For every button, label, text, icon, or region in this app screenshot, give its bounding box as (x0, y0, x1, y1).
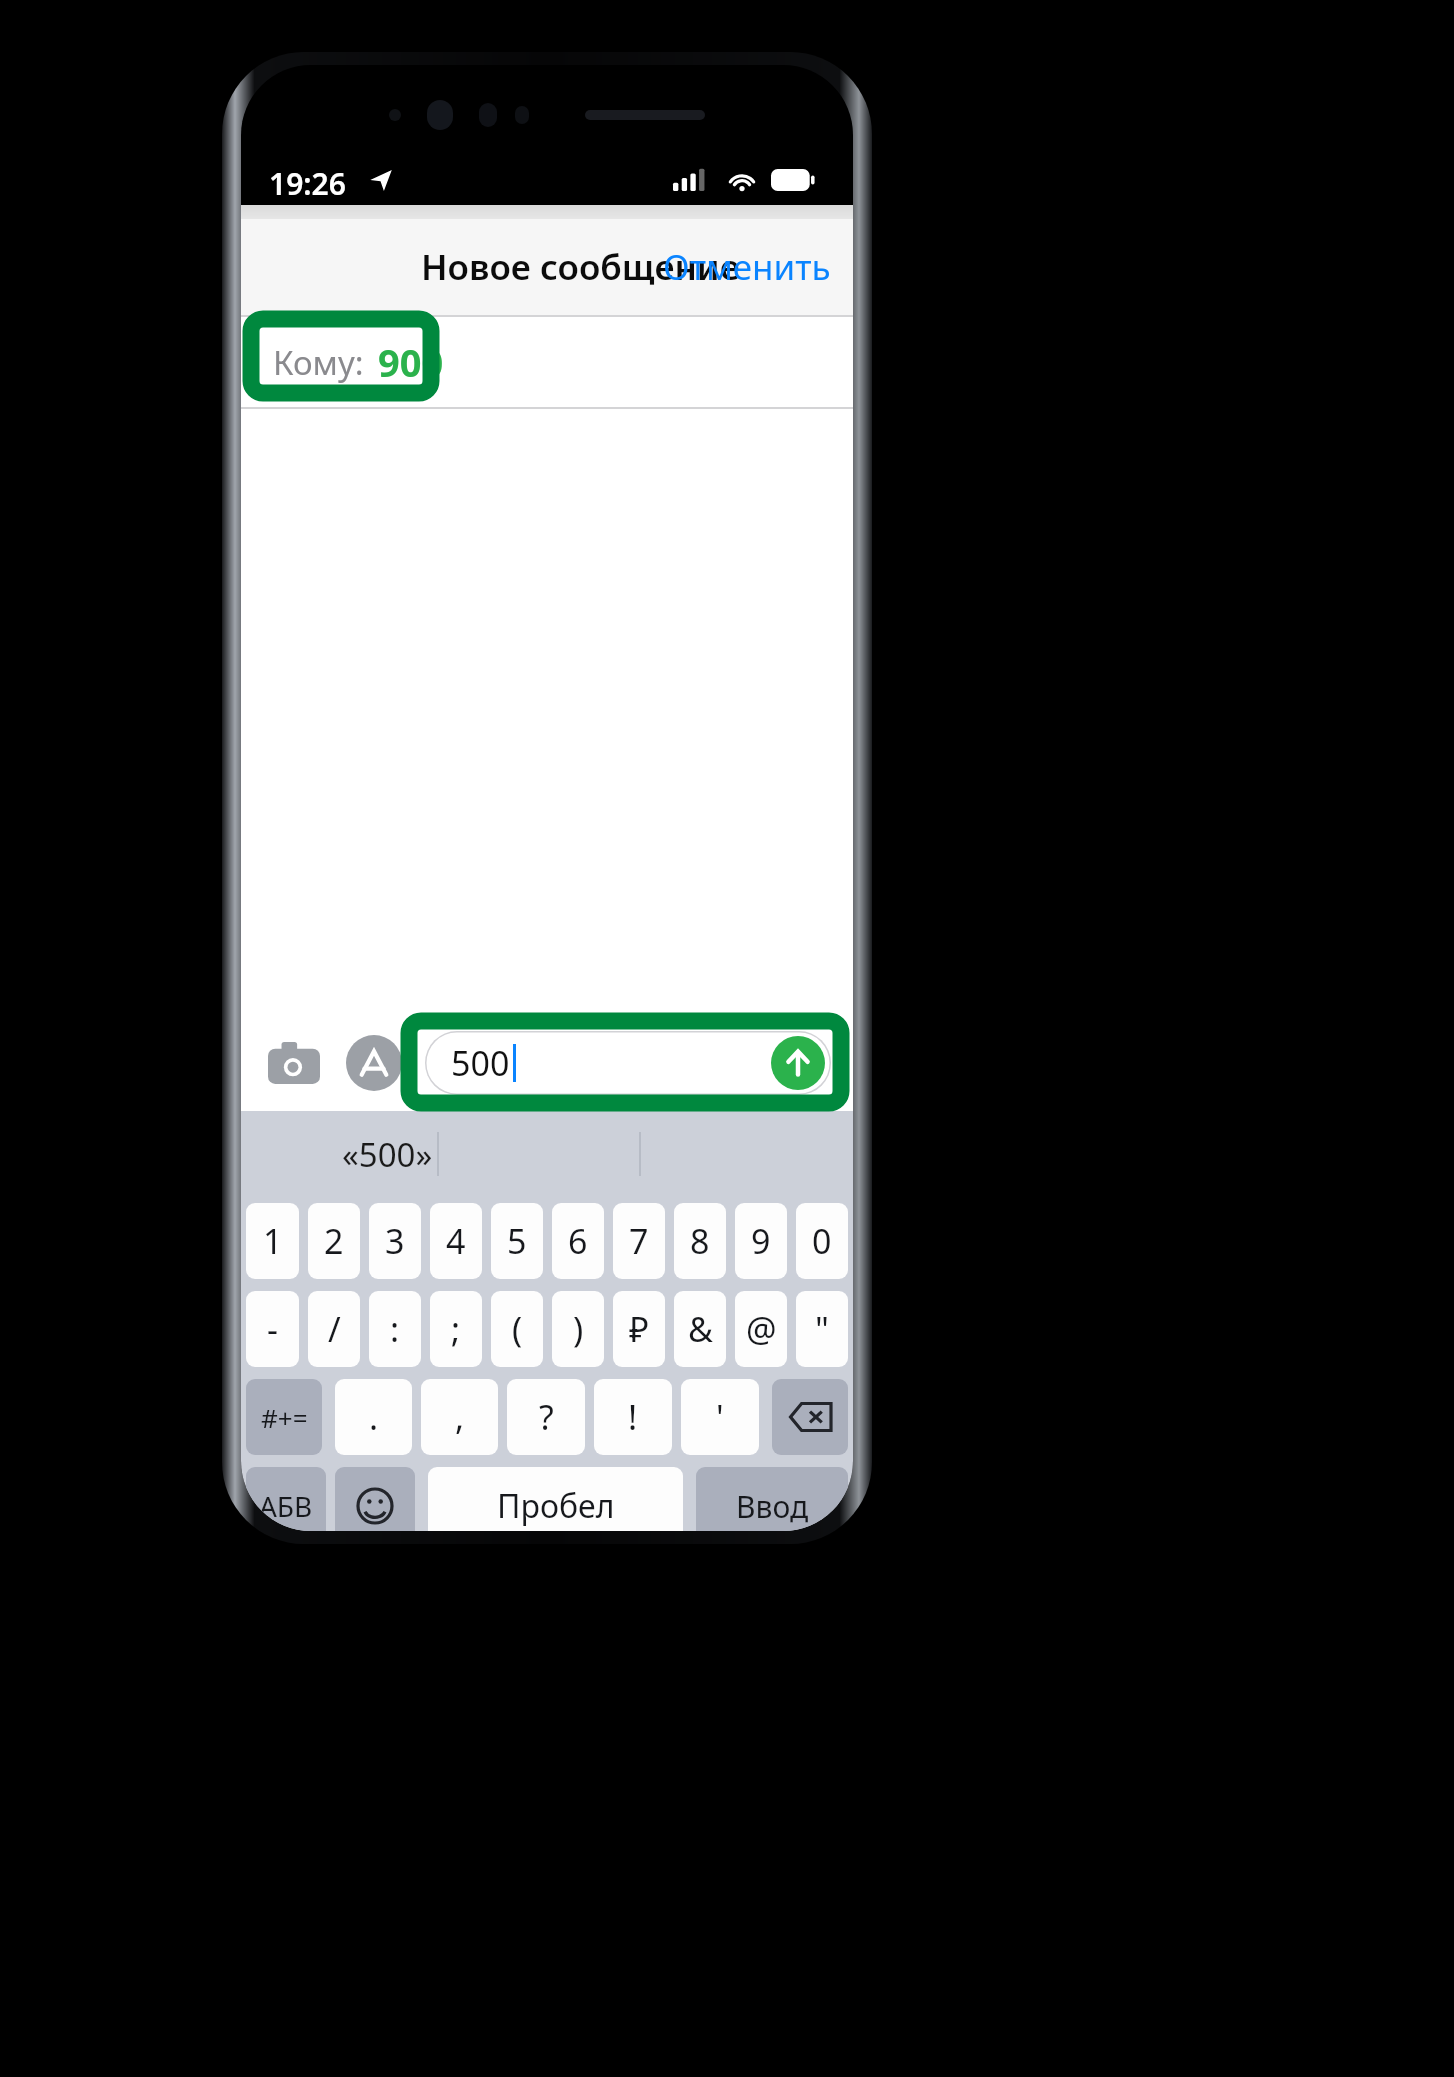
staticText: 5 (507, 1218, 527, 1264)
button[interactable]: Пробел (428, 1467, 683, 1531)
button[interactable]: : (369, 1291, 421, 1367)
staticText: Ввод (736, 1486, 809, 1527)
staticText: 9 (751, 1218, 771, 1264)
button[interactable]: 2 (308, 1203, 360, 1279)
button[interactable]: ( (491, 1291, 543, 1367)
staticText: ' (716, 1394, 724, 1440)
button[interactable]: 0 (796, 1203, 848, 1279)
button[interactable]: " (796, 1291, 848, 1367)
button[interactable]: - (246, 1291, 299, 1367)
button[interactable]: Send (771, 1036, 825, 1090)
button[interactable]: 9 (735, 1203, 787, 1279)
button[interactable]: Кому: (241, 315, 853, 409)
staticText: 19:26 (269, 163, 346, 204)
button[interactable]: 6 (552, 1203, 604, 1279)
button[interactable]: АБВ (246, 1467, 326, 1531)
staticText: : (390, 1306, 400, 1352)
button[interactable]: @ (735, 1291, 787, 1367)
staticText: 7 (629, 1218, 649, 1264)
button[interactable]: 7 (613, 1203, 665, 1279)
staticText: 0 (812, 1218, 832, 1264)
button[interactable]: 4 (430, 1203, 482, 1279)
button[interactable]: , (421, 1379, 498, 1455)
button[interactable]: ₽ (613, 1291, 665, 1367)
staticText: ) (573, 1306, 584, 1352)
staticText: Пробел (497, 1484, 615, 1528)
button[interactable]: 1 (246, 1203, 299, 1279)
button[interactable]: App Store (343, 1032, 405, 1094)
staticText: ! (628, 1394, 638, 1440)
staticText: @ (746, 1306, 777, 1352)
staticText: & (688, 1306, 713, 1352)
staticText: ₽ (629, 1306, 649, 1352)
staticText: ( (512, 1306, 523, 1352)
staticText: «500» (342, 1132, 433, 1177)
button[interactable]: Отменить (655, 233, 839, 301)
staticText: Отменить (663, 243, 831, 291)
staticText: 3 (385, 1218, 405, 1264)
staticText: - (267, 1306, 278, 1352)
button[interactable]: & (674, 1291, 726, 1367)
button[interactable]: 5 (491, 1203, 543, 1279)
staticText: . (369, 1394, 379, 1440)
button[interactable]: / (308, 1291, 360, 1367)
button[interactable]: #+= (246, 1379, 322, 1455)
staticText: 900 (378, 336, 444, 388)
staticText: ? (539, 1394, 554, 1440)
button[interactable]: Camera (263, 1032, 325, 1094)
button[interactable]: . (335, 1379, 412, 1455)
button[interactable]: ! (594, 1379, 672, 1455)
staticText: " (815, 1306, 829, 1352)
button[interactable]: Backspace (772, 1379, 848, 1455)
button[interactable]: ) (552, 1291, 604, 1367)
staticText: АБВ (259, 1487, 313, 1525)
staticText: 6 (568, 1218, 588, 1264)
staticText: / (328, 1306, 341, 1352)
staticText: ; (451, 1306, 461, 1352)
button[interactable]: 500 (425, 1031, 831, 1095)
button[interactable]: 3 (369, 1203, 421, 1279)
staticText: 4 (446, 1218, 466, 1264)
button[interactable]: ' (681, 1379, 759, 1455)
staticText: 2 (324, 1218, 344, 1264)
staticText: 1 (263, 1218, 283, 1264)
button[interactable]: 8 (674, 1203, 726, 1279)
button[interactable]: Emoji (335, 1467, 415, 1531)
staticText: 500 (451, 1040, 510, 1086)
button[interactable]: Ввод (696, 1467, 848, 1531)
button[interactable]: ; (430, 1291, 482, 1367)
staticText: 8 (690, 1218, 710, 1264)
button[interactable]: ? (507, 1379, 585, 1455)
staticText: Кому: (273, 340, 364, 385)
staticText: , (455, 1394, 465, 1440)
staticText: Новое сообщение (421, 243, 740, 291)
staticText: #+= (261, 1400, 308, 1435)
